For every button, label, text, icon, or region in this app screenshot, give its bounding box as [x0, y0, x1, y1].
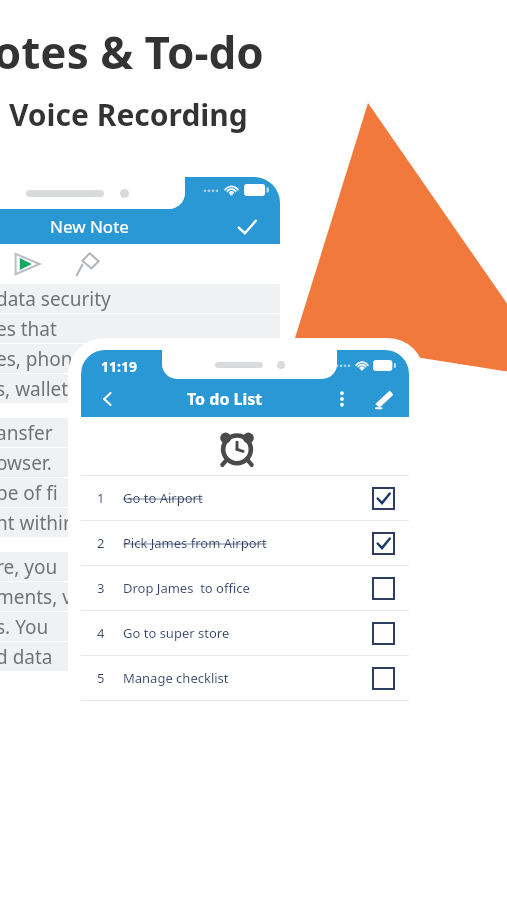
- staticText: Go to Airport: [123, 489, 203, 507]
- staticText: New Note: [50, 215, 129, 238]
- staticText: 5: [97, 669, 105, 687]
- staticText: es that: [0, 316, 57, 342]
- staticText: Drop James to office: [123, 579, 250, 597]
- staticText: d data: [0, 644, 53, 670]
- staticText: Notes & To-do: [0, 22, 264, 82]
- staticText: s, wallet: [0, 376, 69, 402]
- button[interactable]: 5: [81, 656, 409, 700]
- staticText: be of fi: [0, 480, 58, 506]
- staticText: Manage checklist: [123, 669, 229, 687]
- staticText: 11:19: [101, 357, 137, 376]
- staticText: ments, v: [0, 584, 72, 610]
- staticText: To do List: [187, 388, 263, 410]
- button[interactable]: Mark complete: [373, 578, 394, 599]
- button[interactable]: Record voice: [74, 250, 102, 278]
- button[interactable]: Save note: [234, 214, 260, 240]
- button[interactable]: 3: [81, 566, 409, 610]
- staticText: 4: [97, 624, 105, 642]
- staticText: Go to super store: [123, 624, 230, 642]
- button[interactable]: 2: [81, 521, 409, 565]
- button[interactable]: 4: [81, 611, 409, 655]
- staticText: data security: [0, 286, 111, 312]
- button[interactable]: Edit list: [369, 386, 395, 412]
- staticText: 3: [97, 579, 105, 597]
- button[interactable]: More options: [329, 386, 355, 412]
- staticText: re, you: [0, 554, 58, 580]
- button[interactable]: Mark incomplete: [373, 533, 394, 554]
- button[interactable]: 1: [81, 476, 409, 520]
- staticText: owser.: [0, 450, 52, 476]
- staticText: es, phone: [0, 346, 84, 372]
- staticText: with Voice Recording: [0, 94, 248, 135]
- button[interactable]: Back: [95, 386, 121, 412]
- staticText: 1: [97, 489, 105, 507]
- button[interactable]: Play recording: [12, 249, 42, 279]
- staticText: Pick James from Airport: [123, 534, 267, 552]
- button[interactable]: Mark complete: [373, 623, 394, 644]
- staticText: s. You: [0, 614, 49, 640]
- button[interactable]: Mark complete: [373, 668, 394, 689]
- staticText: ansfer: [0, 420, 53, 446]
- button[interactable]: Mark incomplete: [373, 488, 394, 509]
- staticText: 2: [97, 534, 105, 552]
- staticText: nt within: [0, 510, 75, 536]
